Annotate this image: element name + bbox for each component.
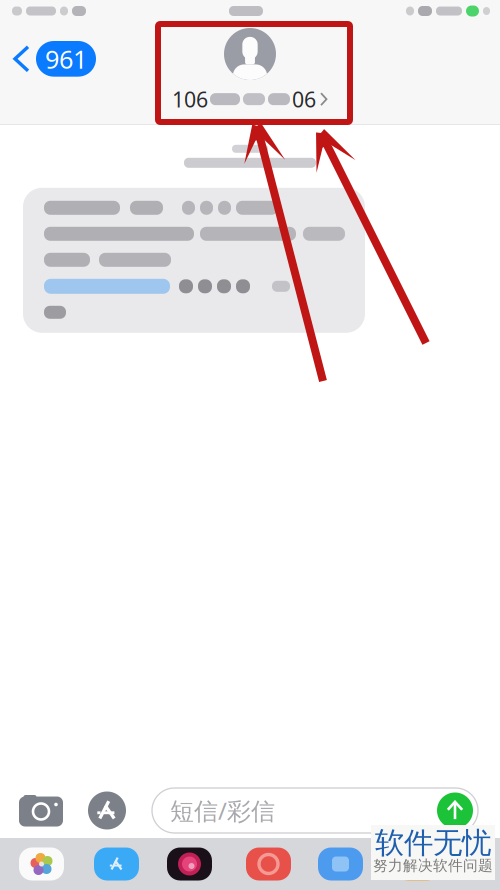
button[interactable]: App Store (94, 838, 139, 890)
button[interactable]: Camera (18, 793, 64, 827)
button[interactable]: Photos (19, 838, 64, 890)
button[interactable]: 961 (0, 22, 96, 77)
staticText: 961 (45, 42, 87, 76)
button[interactable]: More (395, 838, 440, 890)
staticText: 努力解决软件问题 (373, 856, 493, 874)
button[interactable]: Send (437, 792, 473, 828)
button[interactable]: Contacts (318, 838, 363, 890)
staticText: 06 (292, 85, 316, 113)
button[interactable]: Music (167, 838, 212, 890)
button[interactable]: Photo Search (246, 838, 291, 890)
button[interactable]: 106 (172, 22, 328, 113)
staticText: 软件无忧 (375, 825, 491, 861)
button[interactable]: App Store (88, 791, 126, 829)
staticText: 106 (172, 85, 208, 113)
staticText: 短信/彩信 (170, 795, 275, 826)
